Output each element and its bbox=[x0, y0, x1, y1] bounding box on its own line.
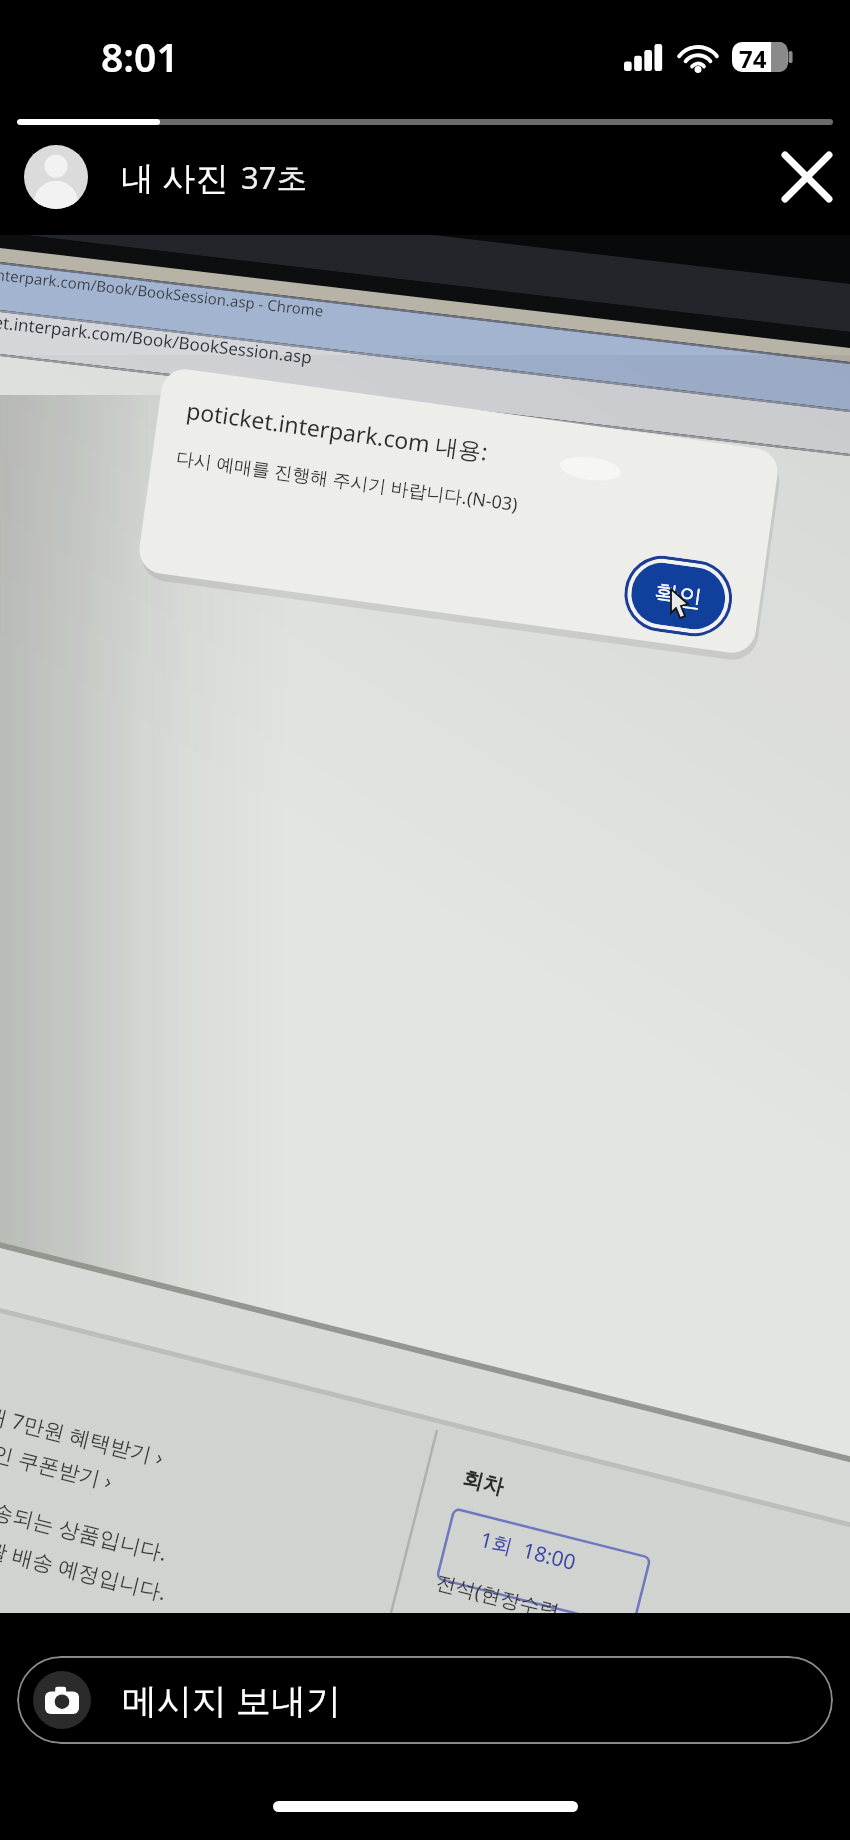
staticText: 내 사진 bbox=[121, 155, 229, 200]
staticText: 1회 18:00 bbox=[477, 1525, 579, 1577]
staticText: et.interpark.com/Book/BookSession.asp bbox=[0, 310, 314, 369]
staticText: 37초 bbox=[241, 156, 308, 198]
staticText: 회차 bbox=[460, 1465, 507, 1500]
staticText: 배송되는 상품입니다. bbox=[0, 1491, 171, 1568]
staticText: 8:01 bbox=[101, 30, 179, 83]
button[interactable]: 확인 bbox=[627, 559, 729, 633]
staticText: 확인 bbox=[652, 578, 704, 614]
staticText: 74 bbox=[739, 42, 767, 72]
button[interactable]: 내 사진 bbox=[24, 145, 308, 209]
button[interactable]: Close story bbox=[773, 143, 841, 211]
staticText: 할인 쿠폰받기 › bbox=[0, 1433, 116, 1496]
staticText: 대 7만원 혜택받기 › bbox=[0, 1400, 166, 1472]
staticText: 메시지 보내기 bbox=[122, 1676, 342, 1724]
button[interactable]: 메시지 보내기 bbox=[17, 1656, 833, 1744]
staticText: 다시 예매를 진행해 주시기 바랍니다.(N-03) bbox=[175, 445, 520, 517]
staticText: nterpark.com/Book/BookSession.asp - Chro… bbox=[0, 264, 325, 321]
staticText: 전석(현장수령 bbox=[433, 1568, 562, 1613]
staticText: poticket.interpark.com 내용: bbox=[185, 394, 490, 466]
staticText: 일괄 배송 예정입니다. bbox=[0, 1529, 170, 1607]
